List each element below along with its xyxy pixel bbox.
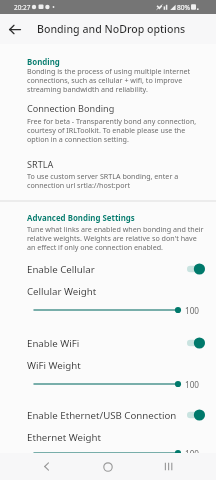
button[interactable]: Home [94, 453, 122, 480]
staticText: Tune what links are enabled when bonding… [27, 224, 205, 252]
staticText: Advanced Bonding Settings [27, 213, 135, 224]
staticText: 80% [177, 3, 191, 12]
staticText: Free for beta - Transparently bond any c… [27, 116, 205, 144]
button[interactable]: Navigate up [0, 14, 28, 44]
staticText: Enable Cellular [27, 263, 95, 276]
button[interactable]: Weight slider [0, 377, 216, 391]
staticText: To use custom server SRTLA bonding, ente… [27, 171, 205, 190]
button[interactable]: Weight slider [0, 446, 216, 460]
button[interactable]: Recent apps [154, 453, 182, 480]
staticText: 20:27 [14, 3, 31, 12]
button[interactable]: Weight slider [0, 303, 216, 317]
staticText: 100 [185, 448, 200, 459]
staticText: Enable Ethernet/USB Connection [27, 409, 177, 422]
button[interactable]: Enable WiFi [0, 335, 216, 351]
staticText: Connection Bonding [27, 102, 115, 114]
button[interactable]: Enable Cellular [0, 261, 216, 277]
staticText: Enable WiFi [27, 337, 80, 350]
staticText: Ethernet Weight [27, 431, 102, 444]
staticText: Cellular Weight [27, 285, 97, 298]
staticText: Bonding [27, 57, 60, 68]
staticText: 100 [185, 379, 200, 390]
button[interactable]: Enable Ethernet/USB Connection [0, 407, 216, 423]
staticText: Bonding and NoDrop options [37, 22, 186, 36]
staticText: Bonding is the process of using multiple… [27, 66, 205, 94]
staticText: WiFi Weight [27, 359, 81, 372]
staticText: 100 [185, 305, 200, 316]
staticText: SRTLA [27, 158, 54, 170]
button[interactable]: Back [32, 453, 60, 480]
